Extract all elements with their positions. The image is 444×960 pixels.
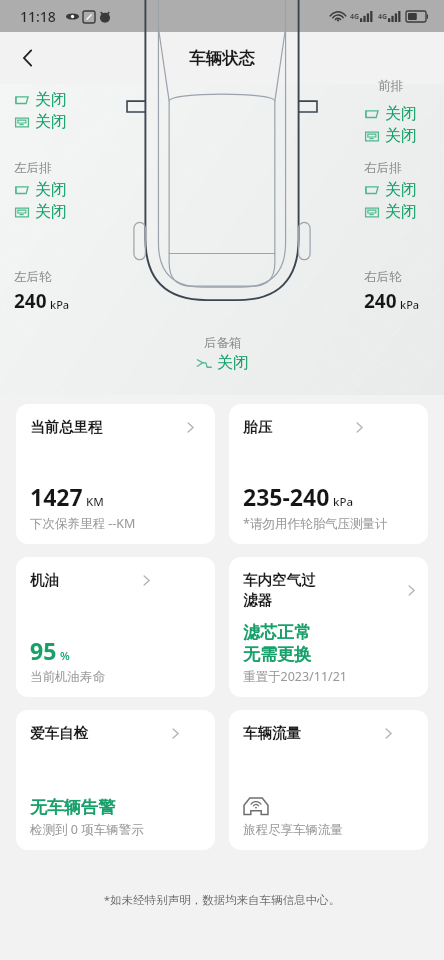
staticText: 11:18	[20, 7, 56, 26]
staticText: 后备箱	[204, 335, 242, 351]
staticText: 滤芯正常	[243, 622, 311, 643]
staticText: *如未经特别声明，数据均来自车辆信息中心。	[0, 892, 444, 908]
staticText: 胎压	[243, 418, 272, 436]
staticText: %	[60, 648, 70, 664]
button[interactable]: 当前总里程	[16, 404, 215, 544]
staticText: 关闭	[385, 202, 417, 222]
staticText: 关闭	[385, 126, 417, 146]
staticText: 无需更换	[243, 644, 311, 665]
staticText: 关闭	[35, 180, 67, 200]
staticText: 240	[14, 288, 47, 314]
staticText: 车内空气过滤器	[243, 571, 324, 609]
staticText: 机油	[30, 571, 59, 589]
staticText: 关闭	[217, 353, 249, 373]
staticText: 左后排	[14, 160, 52, 176]
button[interactable]: Back	[8, 38, 48, 78]
staticText: 检测到 0 项车辆警示	[30, 821, 144, 838]
staticText: 当前机油寿命	[30, 669, 105, 685]
staticText: 4G	[350, 12, 360, 22]
staticText: 关闭	[35, 202, 67, 222]
button[interactable]: 爱车自检	[16, 710, 215, 850]
staticText: 235-240	[243, 481, 330, 512]
staticText: 右后排	[364, 160, 402, 176]
staticText: 95	[30, 635, 57, 666]
staticText: 1427	[30, 481, 83, 512]
staticText: 左后轮	[14, 269, 52, 285]
staticText: kPa	[400, 297, 420, 312]
staticText: 关闭	[35, 90, 67, 110]
button[interactable]: 车内空气过滤器	[229, 557, 428, 697]
staticText: 240	[364, 288, 397, 314]
staticText: kPa	[50, 297, 70, 312]
staticText: 右后轮	[364, 269, 402, 285]
staticText: 当前总里程	[30, 418, 103, 436]
staticText: 前排	[378, 78, 403, 94]
staticText: 4G	[378, 12, 388, 22]
staticText: 关闭	[35, 112, 67, 132]
staticText: KM	[86, 494, 104, 510]
staticText: 关闭	[385, 104, 417, 124]
staticText: 爱车自检	[30, 724, 88, 742]
staticText: 下次保养里程 --KM	[30, 515, 136, 532]
staticText: 重置于2023/11/21	[243, 668, 348, 685]
staticText: kPa	[333, 494, 354, 510]
staticText: *请勿用作轮胎气压测量计	[243, 515, 388, 532]
staticText: 无车辆告警	[30, 797, 115, 818]
button[interactable]: 车辆流量	[229, 710, 428, 850]
button[interactable]: 胎压	[229, 404, 428, 544]
button[interactable]: 机油	[16, 557, 215, 697]
staticText: 关闭	[385, 180, 417, 200]
staticText: 车辆流量	[243, 724, 301, 742]
staticText: 车辆状态	[189, 48, 255, 69]
staticText: 旅程尽享车辆流量	[243, 822, 343, 838]
